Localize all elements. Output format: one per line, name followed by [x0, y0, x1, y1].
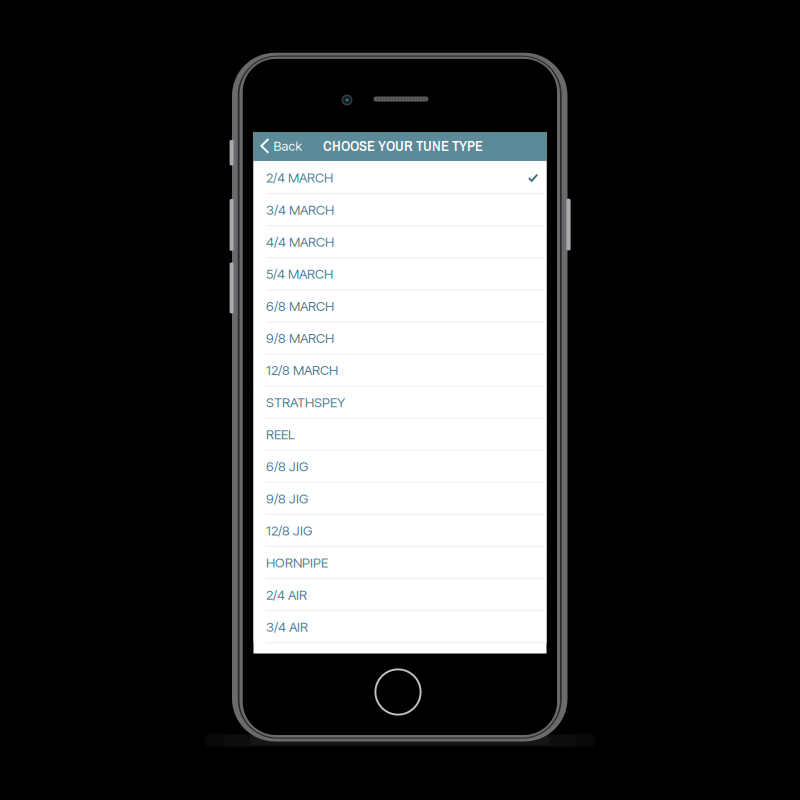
button[interactable]: 9/8 MARCH	[253, 321, 546, 353]
button[interactable]: Back	[253, 132, 309, 160]
staticText: 2/4 AIR	[266, 587, 307, 603]
button[interactable]: 3/4 MARCH	[253, 193, 546, 225]
button[interactable]: 4/4 MARCH	[253, 225, 546, 257]
staticText: 4/4 MARCH	[266, 234, 334, 250]
staticText: HORNPIPE	[266, 555, 328, 571]
staticText: 6/8 MARCH	[266, 298, 334, 314]
staticText: 3/4 MARCH	[266, 202, 334, 218]
staticText: 6/8 JIG	[266, 458, 308, 474]
button[interactable]: 9/8 JIG	[253, 482, 546, 514]
button[interactable]: STRATHSPEY	[253, 386, 546, 418]
staticText: 12/8 MARCH	[266, 362, 338, 378]
button[interactable]: REEL	[253, 418, 546, 450]
staticText: 9/8 JIG	[266, 490, 308, 507]
button[interactable]: 3/4 AIR	[253, 610, 546, 642]
button[interactable]: 12/8 JIG	[253, 514, 546, 546]
staticText: Back	[273, 138, 301, 154]
button[interactable]: 2/4 MARCH	[253, 161, 546, 193]
button[interactable]: 6/8 JIG	[253, 450, 546, 482]
button[interactable]: 6/8 MARCH	[253, 289, 546, 321]
button[interactable]: 2/4 AIR	[253, 578, 546, 610]
staticText: 12/8 JIG	[266, 523, 312, 539]
button[interactable]: 5/4 MARCH	[253, 257, 546, 289]
button[interactable]: HORNPIPE	[253, 546, 546, 578]
staticText: STRATHSPEY	[266, 394, 345, 410]
staticText: 2/4 MARCH	[266, 170, 333, 186]
staticText: CHOOSE YOUR TUNE TYPE	[323, 136, 483, 156]
staticText: 3/4 AIR	[266, 619, 308, 635]
staticText: 5/4 MARCH	[266, 266, 333, 282]
staticText: REEL	[266, 426, 295, 442]
staticText: 9/8 MARCH	[266, 330, 334, 346]
button[interactable]: 12/8 MARCH	[253, 353, 546, 386]
